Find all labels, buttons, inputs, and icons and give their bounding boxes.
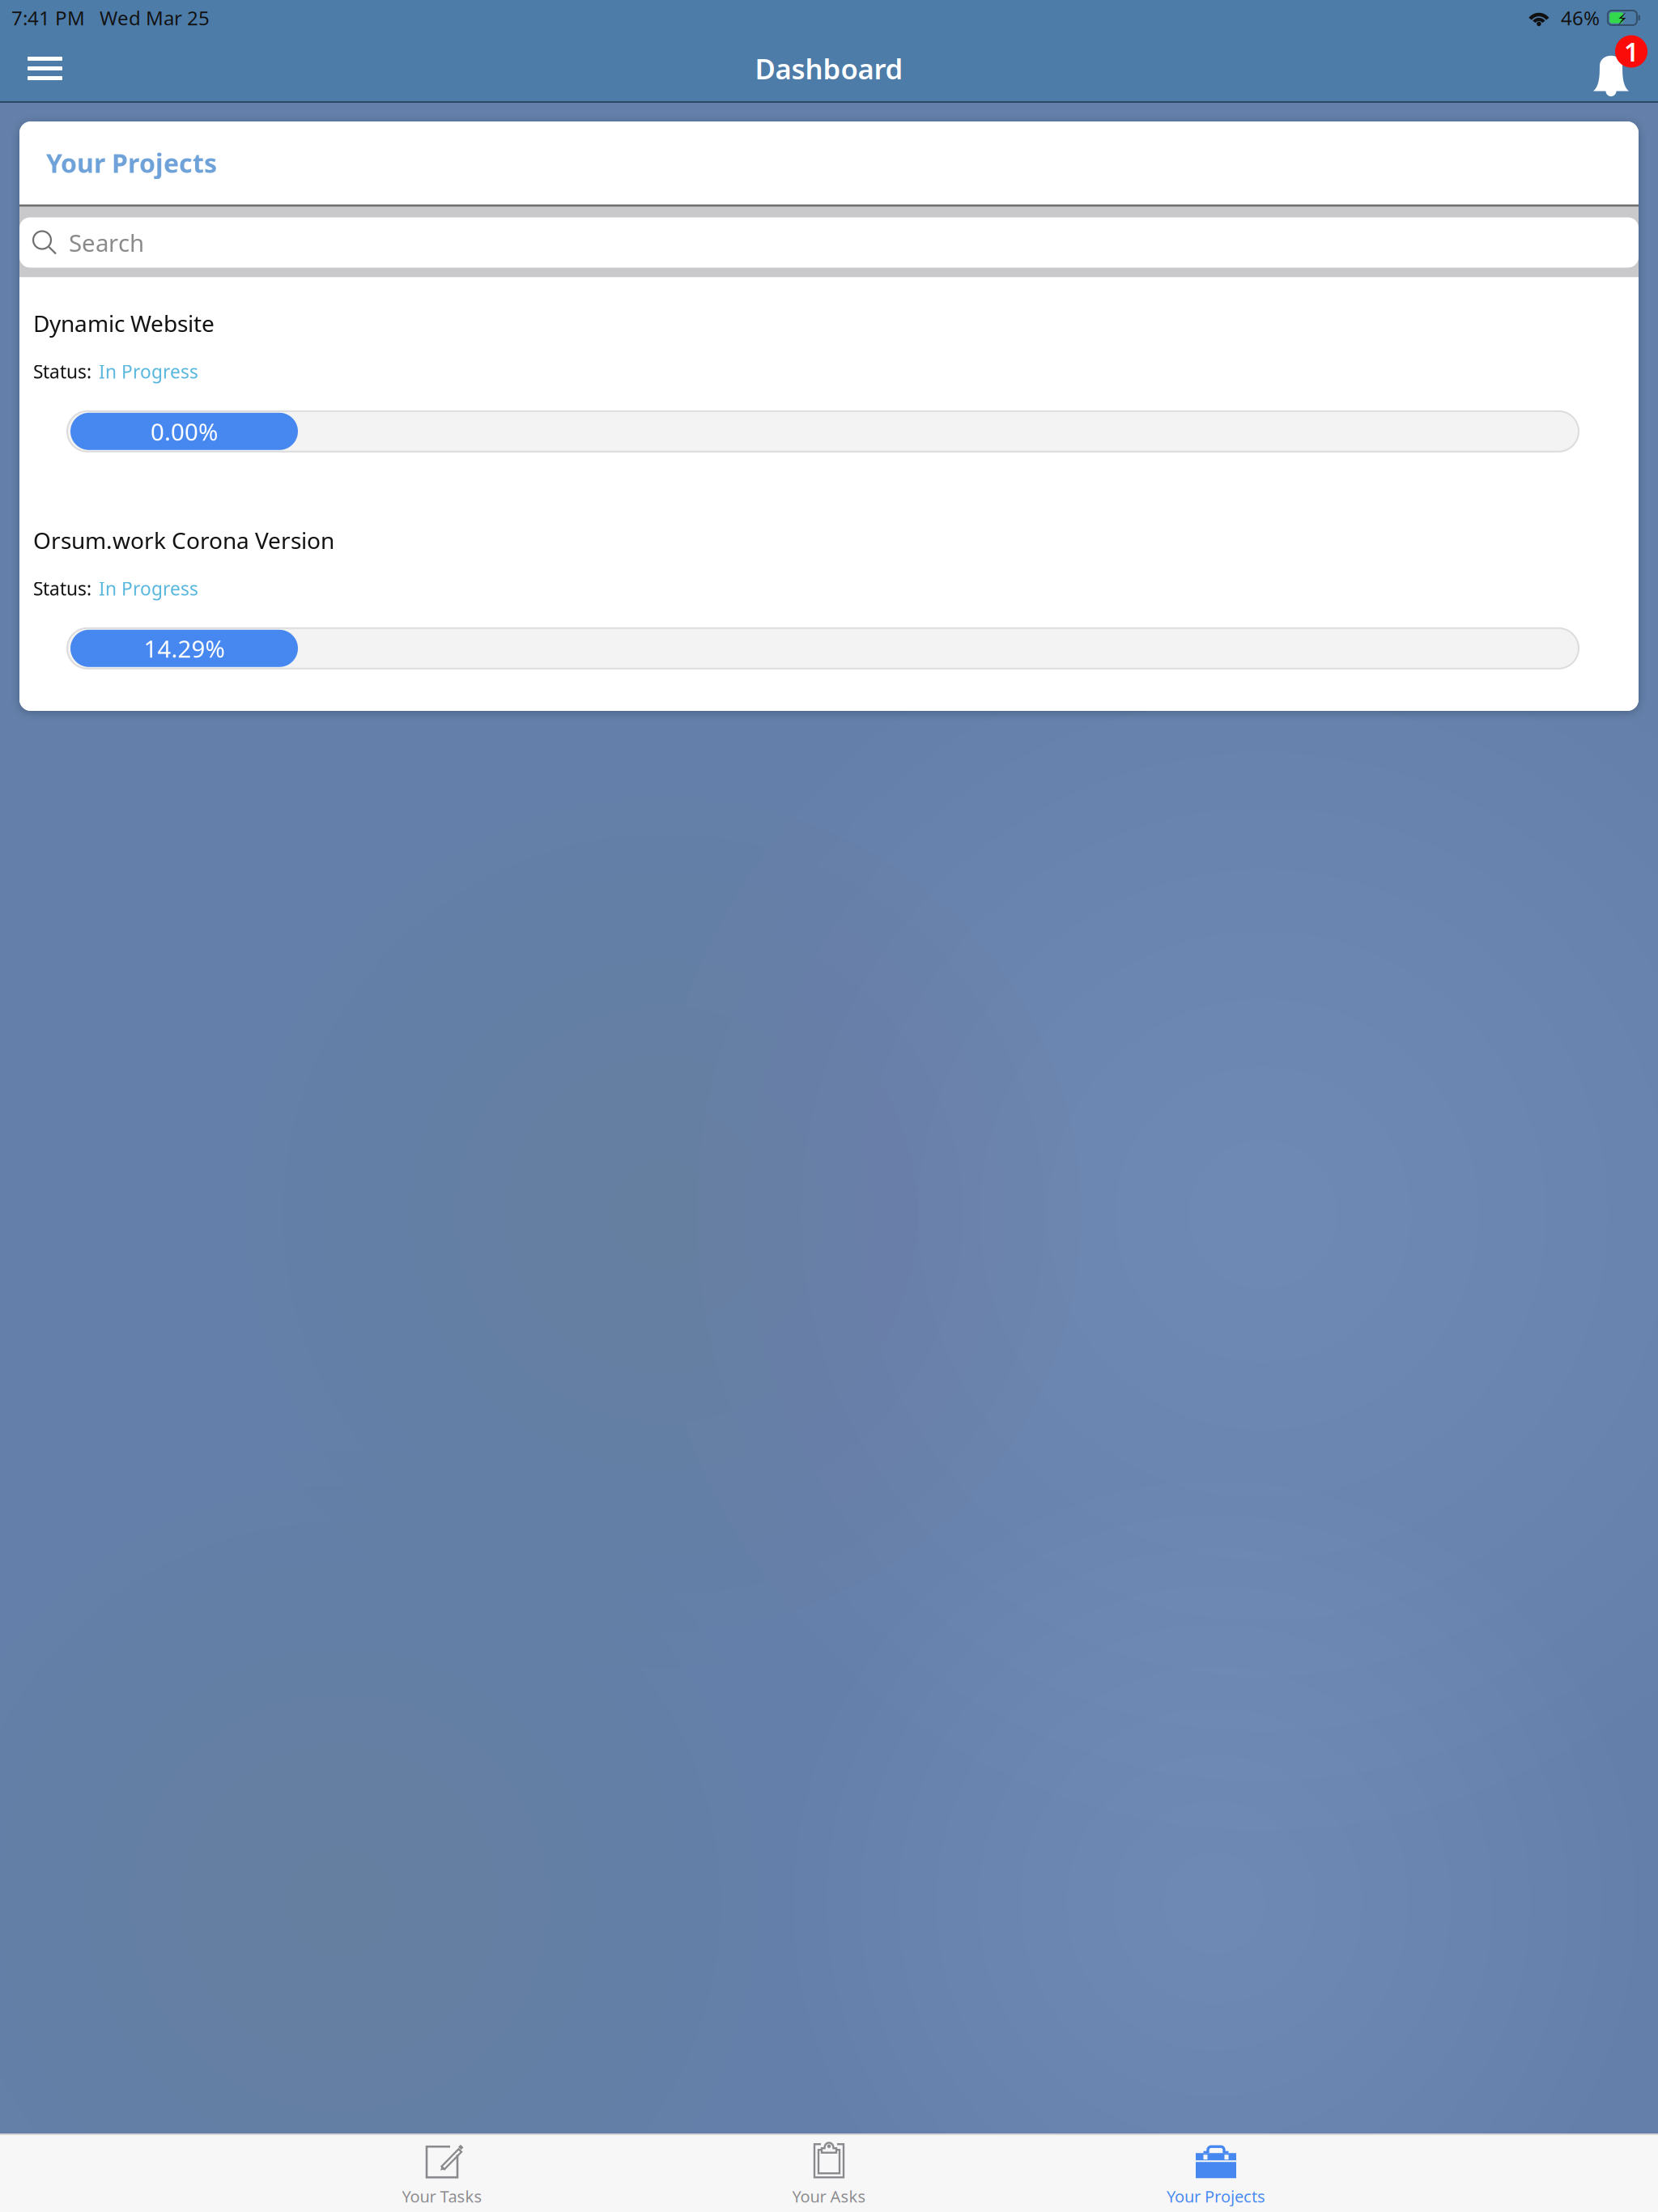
button[interactable]: Your Asks: [636, 2135, 1022, 2212]
staticText: Status:: [33, 359, 91, 384]
staticText: Wed Mar 25: [100, 5, 210, 31]
button[interactable]: Orsum.work Corona Version: [19, 494, 1639, 711]
button[interactable]: Search: [19, 207, 1639, 277]
staticText: 14.29%: [144, 633, 225, 664]
staticText: Your Tasks: [402, 2185, 482, 2207]
staticText: In Progress: [99, 576, 198, 601]
staticText: Status:: [33, 576, 91, 601]
staticText: Dashboard: [755, 50, 903, 87]
button[interactable]: Menu: [28, 44, 84, 93]
staticText: In Progress: [99, 359, 198, 384]
staticText: Your Projects: [1167, 2185, 1265, 2207]
staticText: 46%: [1561, 5, 1600, 31]
staticText: 0.00%: [151, 416, 218, 447]
staticText: Your Projects: [46, 146, 217, 180]
staticText: 1: [1624, 34, 1639, 69]
staticText: Orsum.work Corona Version: [33, 525, 334, 555]
staticText: 7:41 PM: [11, 5, 85, 31]
button[interactable]: Your Tasks: [249, 2135, 636, 2212]
button[interactable]: Dynamic Website: [19, 277, 1639, 494]
button[interactable]: Notifications: [1585, 40, 1639, 97]
button[interactable]: Your Projects: [1022, 2135, 1409, 2212]
staticText: Search: [69, 227, 144, 258]
staticText: Your Asks: [792, 2185, 866, 2207]
staticText: Dynamic Website: [33, 308, 215, 338]
